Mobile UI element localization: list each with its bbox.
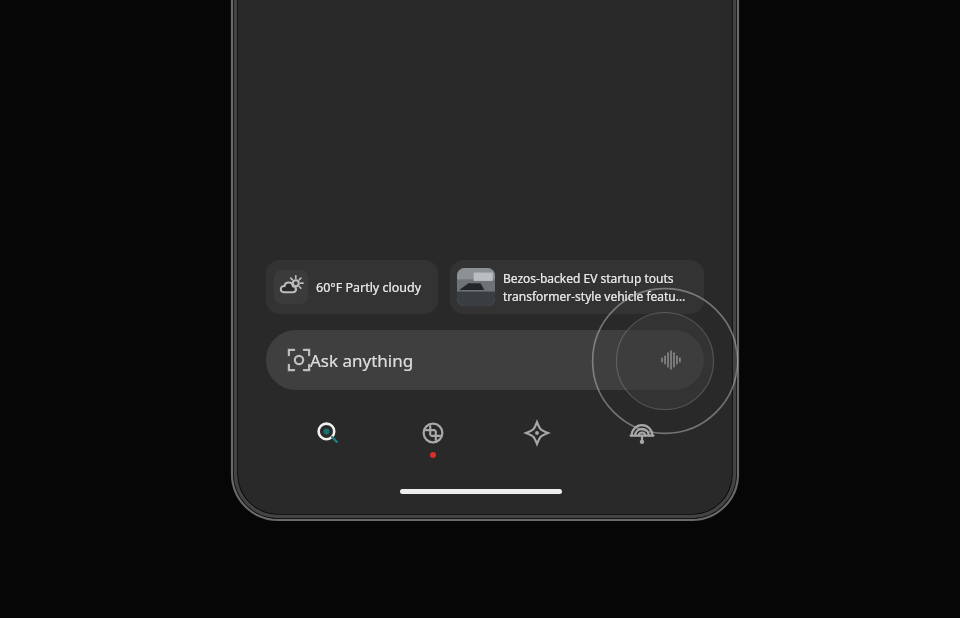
staticText: Bezos-backed EV startup touts — [503, 270, 674, 286]
button[interactable]: Search — [300, 420, 356, 468]
button[interactable]: Google Lens — [266, 330, 704, 390]
button[interactable]: Voice search — [654, 343, 688, 377]
button[interactable]: Saved — [614, 420, 670, 468]
staticText: 60°F Partly cloudy — [316, 279, 422, 296]
button[interactable]: Discover — [405, 420, 461, 468]
button[interactable]: AI Mode — [509, 420, 565, 468]
button[interactable]: 60°F Partly cloudy — [266, 260, 438, 314]
button[interactable]: Google Lens — [282, 343, 316, 377]
button[interactable]: Bezos-backed EV startup touts — [450, 260, 704, 314]
staticText: transformer-style vehicle featu… — [503, 288, 686, 304]
staticText: Ask anything — [310, 349, 648, 372]
